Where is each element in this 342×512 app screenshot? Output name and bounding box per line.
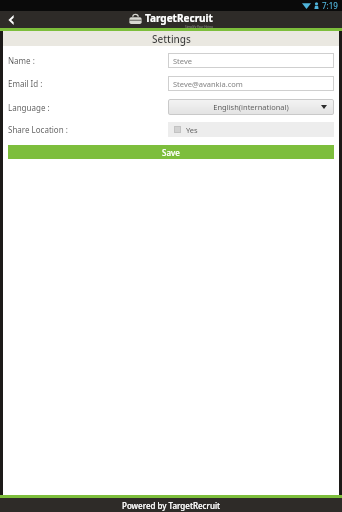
staticText: Powered by TargetRecruit [122,500,221,511]
button[interactable]: Back [0,11,20,28]
button[interactable]: Steve@avankia.com [168,76,334,91]
staticText: Share Location : [8,124,68,135]
staticText: Email Id : [8,78,43,89]
button[interactable]: Save [8,145,334,159]
staticText: Yes [186,125,198,135]
button[interactable]: English(international) [168,99,334,115]
button[interactable]: Steve [168,53,334,68]
staticText: Save [162,147,180,158]
staticText: English(international) [213,102,289,112]
staticText: 7:19 [322,0,338,11]
staticText: Settings [152,32,191,46]
staticText: Language : [8,102,50,113]
staticText: Steve@avankia.com [173,79,243,89]
staticText: Simplify Your Hiring [185,25,213,28]
button[interactable]: Yes [168,122,334,137]
staticText: Name : [8,55,35,66]
staticText: TargetRecruit [145,11,213,25]
staticText: Steve [173,56,192,66]
